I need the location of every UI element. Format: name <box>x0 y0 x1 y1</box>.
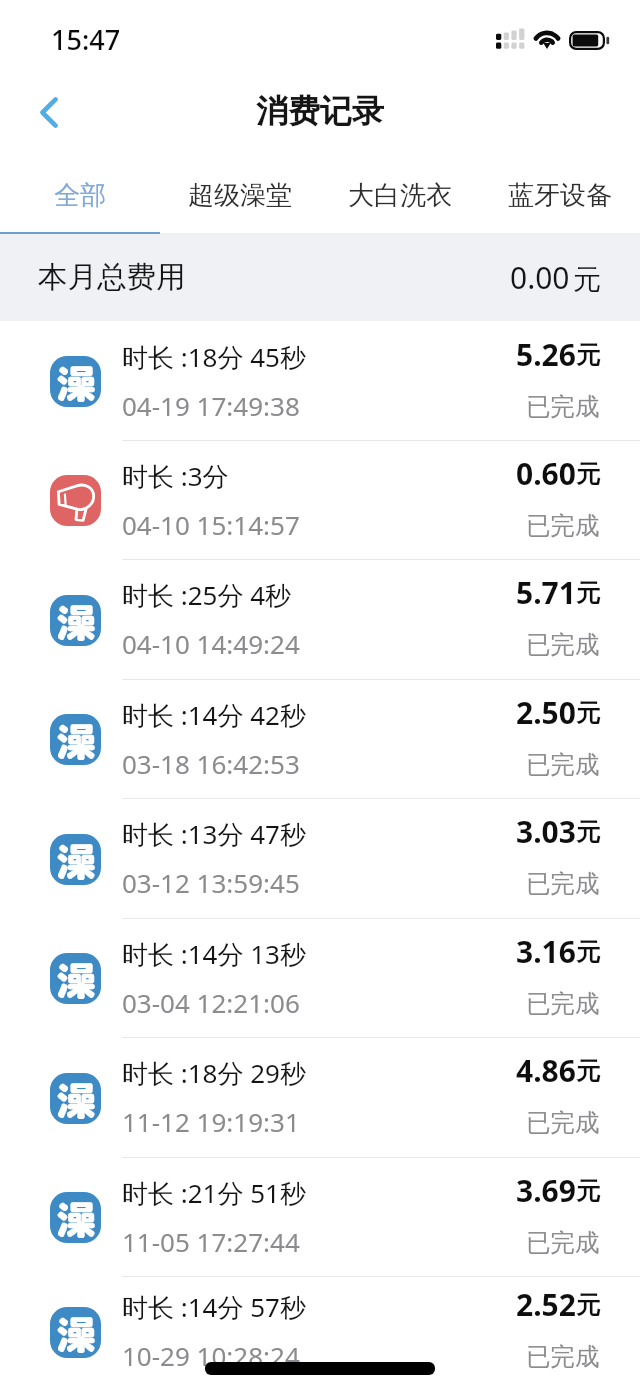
staticText: 时长 :3分 <box>122 458 229 494</box>
button[interactable]: Back <box>18 81 80 143</box>
staticText: 03-12 13:59:45 <box>122 865 300 900</box>
staticText: 澡 <box>56 834 96 885</box>
staticText: 0.60 <box>516 453 576 494</box>
staticText: 已完成 <box>526 1341 600 1372</box>
button[interactable]: 澡 <box>0 679 640 798</box>
staticText: 已完成 <box>526 510 600 541</box>
staticText: 元 <box>576 698 600 728</box>
staticText: 5.71 <box>516 572 576 613</box>
staticText: 3.16 <box>516 931 576 972</box>
staticText: 04-10 14:49:24 <box>122 626 300 661</box>
staticText: 元 <box>576 817 600 847</box>
staticText: 澡 <box>56 953 96 1004</box>
staticText: 元 <box>576 1176 600 1206</box>
staticText: 消费记录 <box>256 91 384 131</box>
staticText: 已完成 <box>526 988 600 1019</box>
staticText: 3.69 <box>516 1170 576 1211</box>
staticText: 03-04 12:21:06 <box>122 985 300 1020</box>
staticText: 蓝牙设备 <box>508 179 612 212</box>
staticText: 15:47 <box>51 21 121 58</box>
staticText: 0.00 <box>510 257 570 298</box>
staticText: 2.50 <box>516 692 576 733</box>
staticText: 全部 <box>54 179 106 212</box>
staticText: 时长 :18分 29秒 <box>122 1055 306 1091</box>
staticText: 时长 :14分 57秒 <box>122 1289 306 1325</box>
button[interactable]: 澡 <box>0 918 640 1037</box>
staticText: 元 <box>576 578 600 608</box>
staticText: 10-29 10:28:24 <box>122 1338 300 1373</box>
staticText: 已完成 <box>526 391 600 422</box>
staticText: 已完成 <box>526 868 600 899</box>
staticText: 03-18 16:42:53 <box>122 746 300 781</box>
staticText: 04-19 17:49:38 <box>122 388 300 423</box>
button[interactable]: 蓝牙设备 <box>480 158 640 232</box>
staticText: 本月总费用 <box>38 259 186 296</box>
staticText: 元 <box>576 340 600 370</box>
button[interactable]: 大白洗衣 <box>320 158 480 232</box>
button[interactable]: 澡 <box>0 559 640 679</box>
staticText: 时长 :25分 4秒 <box>122 577 292 613</box>
staticText: 元 <box>576 937 600 967</box>
staticText: 澡 <box>56 1307 96 1358</box>
staticText: 04-10 15:14:57 <box>122 507 300 542</box>
staticText: 5.26 <box>516 334 576 375</box>
button[interactable]: 澡 <box>0 1157 640 1276</box>
staticText: 已完成 <box>526 749 600 780</box>
staticText: 4.86 <box>516 1050 576 1091</box>
staticText: 澡 <box>56 595 96 646</box>
button[interactable]: 澡 <box>0 321 640 440</box>
button[interactable]: 澡 <box>0 1037 640 1157</box>
staticText: 时长 :18分 45秒 <box>122 339 306 375</box>
button[interactable]: 时长 :3分 <box>0 440 640 559</box>
button[interactable]: 澡 <box>0 798 640 918</box>
staticText: 已完成 <box>526 1107 600 1138</box>
staticText: 元 <box>573 262 601 297</box>
button[interactable]: 澡 <box>0 1276 640 1386</box>
staticText: 时长 :14分 13秒 <box>122 936 306 972</box>
staticText: 元 <box>576 1290 600 1320</box>
staticText: 元 <box>576 1056 600 1086</box>
staticText: 澡 <box>56 356 96 407</box>
staticText: 澡 <box>56 1073 96 1124</box>
staticText: 已完成 <box>526 629 600 660</box>
staticText: 大白洗衣 <box>348 179 452 212</box>
staticText: 2.52 <box>516 1284 576 1325</box>
staticText: 11-05 17:27:44 <box>122 1224 300 1259</box>
staticText: 11-12 19:19:31 <box>122 1104 300 1139</box>
staticText: 已完成 <box>526 1227 600 1258</box>
staticText: 3.03 <box>516 811 576 852</box>
button[interactable]: 全部 <box>0 158 160 232</box>
staticText: 元 <box>576 459 600 489</box>
staticText: 时长 :21分 51秒 <box>122 1175 306 1211</box>
staticText: 超级澡堂 <box>188 179 292 212</box>
staticText: 时长 :13分 47秒 <box>122 816 306 852</box>
staticText: 时长 :14分 42秒 <box>122 697 306 733</box>
staticText: 澡 <box>56 1192 96 1243</box>
button[interactable]: 超级澡堂 <box>160 158 320 232</box>
staticText: 澡 <box>56 714 96 765</box>
